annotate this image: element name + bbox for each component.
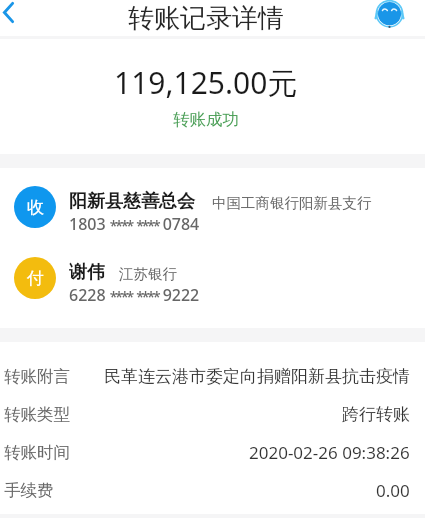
staticText: 转账成功: [173, 109, 239, 130]
staticText: 付: [27, 268, 44, 289]
staticText: 119,125.00元: [114, 62, 298, 103]
button[interactable]: Customer service: [372, 0, 408, 34]
staticText: 2020-02-26 09:38:26: [249, 441, 410, 464]
staticText: 民革连云港市委定向捐赠阳新县抗击疫情: [104, 366, 410, 387]
button[interactable]: Back: [0, 0, 40, 34]
staticText: 转账时间: [4, 442, 70, 463]
staticText: 阳新县慈善总会: [69, 190, 195, 213]
button[interactable]: 收: [0, 186, 425, 228]
staticText: 跨行转账: [342, 404, 410, 425]
staticText: 转账附言: [4, 366, 70, 387]
staticText: 0.00: [376, 479, 410, 502]
staticText: 中国工商银行阳新县支行: [212, 194, 372, 212]
staticText: 手续费: [4, 480, 54, 501]
button[interactable]: 付: [0, 257, 425, 299]
staticText: 6228 **** **** 9222: [69, 284, 200, 306]
staticText: 收: [27, 197, 44, 218]
staticText: 谢伟: [69, 261, 105, 284]
staticText: 转账类型: [4, 404, 70, 425]
staticText: 转账记录详情: [128, 2, 284, 35]
staticText: 1803 **** **** 0784: [69, 213, 200, 235]
staticText: 江苏银行: [119, 265, 177, 283]
